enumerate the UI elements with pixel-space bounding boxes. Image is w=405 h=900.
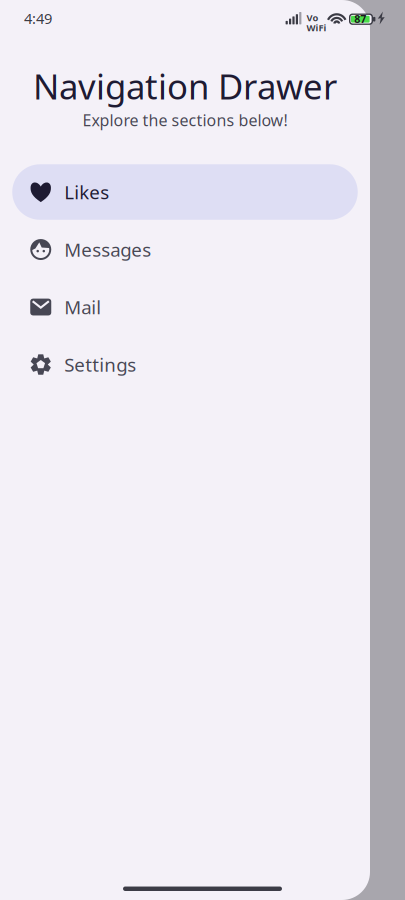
staticText: Messages — [64, 237, 151, 262]
staticText: Vo — [306, 11, 318, 24]
staticText: 4:49 — [24, 8, 52, 28]
staticText: 87 — [354, 12, 366, 26]
staticText: Navigation Drawer — [33, 63, 337, 109]
staticText: Explore the sections below! — [82, 109, 287, 131]
staticText: Mail — [64, 295, 101, 319]
button[interactable]: Messages — [12, 222, 358, 277]
button[interactable]: Likes — [12, 164, 358, 220]
button[interactable]: Mail — [12, 279, 358, 335]
button[interactable]: Settings — [12, 337, 358, 392]
staticText: WiFi — [306, 21, 326, 34]
staticText: Settings — [64, 352, 136, 377]
staticText: Likes — [64, 180, 109, 204]
